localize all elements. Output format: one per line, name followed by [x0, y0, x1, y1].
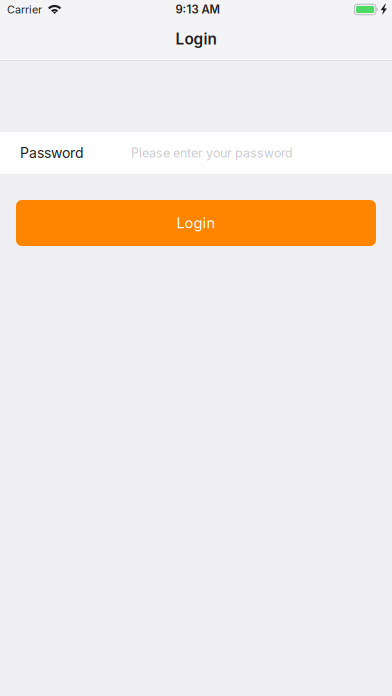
staticText: 9:13 AM [175, 3, 219, 16]
staticText: Password [20, 144, 84, 161]
staticText: Login [175, 30, 216, 48]
button[interactable]: Login [16, 200, 376, 246]
staticText: Carrier [7, 3, 42, 16]
button[interactable]: Password [0, 132, 392, 174]
staticText: Please enter your password [131, 145, 293, 160]
staticText: Login [176, 214, 215, 232]
